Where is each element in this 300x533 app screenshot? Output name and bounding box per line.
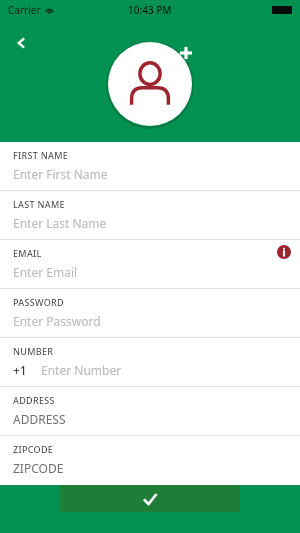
staticText: +1 — [13, 362, 27, 378]
staticText: ADDRESS — [13, 411, 66, 427]
staticText: Enter Last Name — [13, 215, 107, 231]
button[interactable]: LAST NAME — [0, 191, 300, 239]
staticText: PASSWORD — [13, 296, 64, 308]
button[interactable]: NUMBER — [0, 338, 300, 386]
button[interactable]: FIRST NAME — [0, 142, 300, 190]
staticText: EMAIL — [13, 247, 42, 259]
staticText: FIRST NAME — [13, 149, 69, 161]
staticText: ZIPCODE — [13, 460, 64, 476]
button[interactable]: Email info — [277, 245, 291, 259]
staticText: ADDRESS — [13, 394, 55, 406]
button[interactable]: EMAIL — [0, 240, 300, 288]
staticText: Enter Password — [13, 313, 101, 329]
staticText: LAST NAME — [13, 198, 65, 210]
staticText: NUMBER — [13, 345, 54, 357]
button[interactable]: ADDRESS — [0, 387, 300, 435]
staticText: Enter Number — [41, 362, 122, 378]
button[interactable]: ZIPCODE — [0, 436, 300, 484]
button[interactable]: PASSWORD — [0, 289, 300, 337]
button[interactable]: Back — [6, 28, 36, 58]
staticText: Carrier — [8, 3, 41, 17]
button[interactable]: Add profile photo — [100, 41, 200, 129]
staticText: ZIPCODE — [13, 443, 54, 455]
staticText: Enter First Name — [13, 166, 108, 182]
staticText: 10:43 PM — [128, 3, 172, 17]
button[interactable]: Submit — [60, 485, 240, 512]
staticText: Enter Email — [13, 264, 78, 280]
